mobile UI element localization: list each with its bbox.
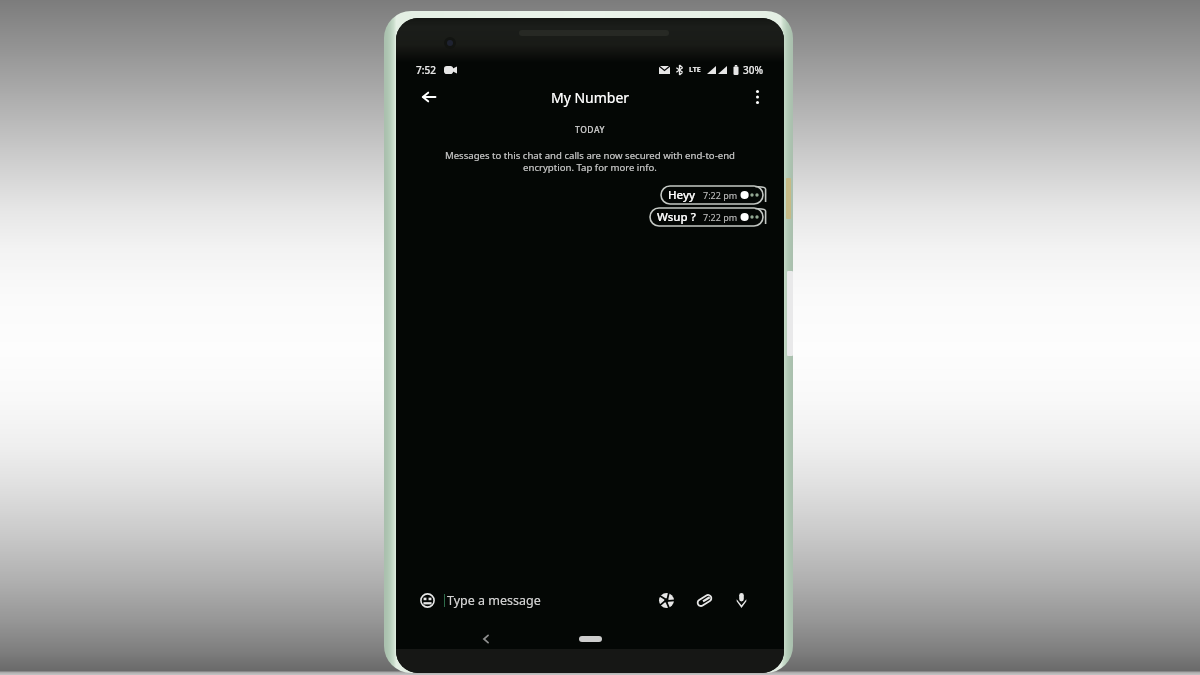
button[interactable]: More options	[744, 84, 770, 110]
staticText: 7:22 pm	[703, 189, 738, 201]
button[interactable]: Voice message	[731, 590, 751, 610]
button[interactable]: Heyy	[661, 186, 763, 204]
button[interactable]: Back	[477, 630, 495, 648]
staticText: 7:22 pm	[703, 211, 738, 223]
button[interactable]: Home	[579, 636, 602, 642]
staticText: My Number	[551, 88, 630, 107]
button[interactable]: Wsup ?	[650, 208, 763, 226]
staticText: Heyy	[668, 187, 696, 203]
button[interactable]: Camera	[656, 590, 676, 610]
staticText: LTE	[689, 65, 701, 75]
staticText: 7:52	[416, 63, 436, 77]
staticText: Type a message	[447, 592, 541, 609]
button[interactable]: Messages to this chat and calls are now …	[396, 149, 784, 174]
button[interactable]: Emoji	[417, 590, 437, 610]
button[interactable]: Back	[416, 84, 442, 110]
button[interactable]: Attach	[694, 590, 714, 610]
staticText: Wsup ?	[657, 209, 696, 225]
staticText: TODAY	[396, 124, 784, 136]
staticText: 30%	[743, 63, 763, 77]
